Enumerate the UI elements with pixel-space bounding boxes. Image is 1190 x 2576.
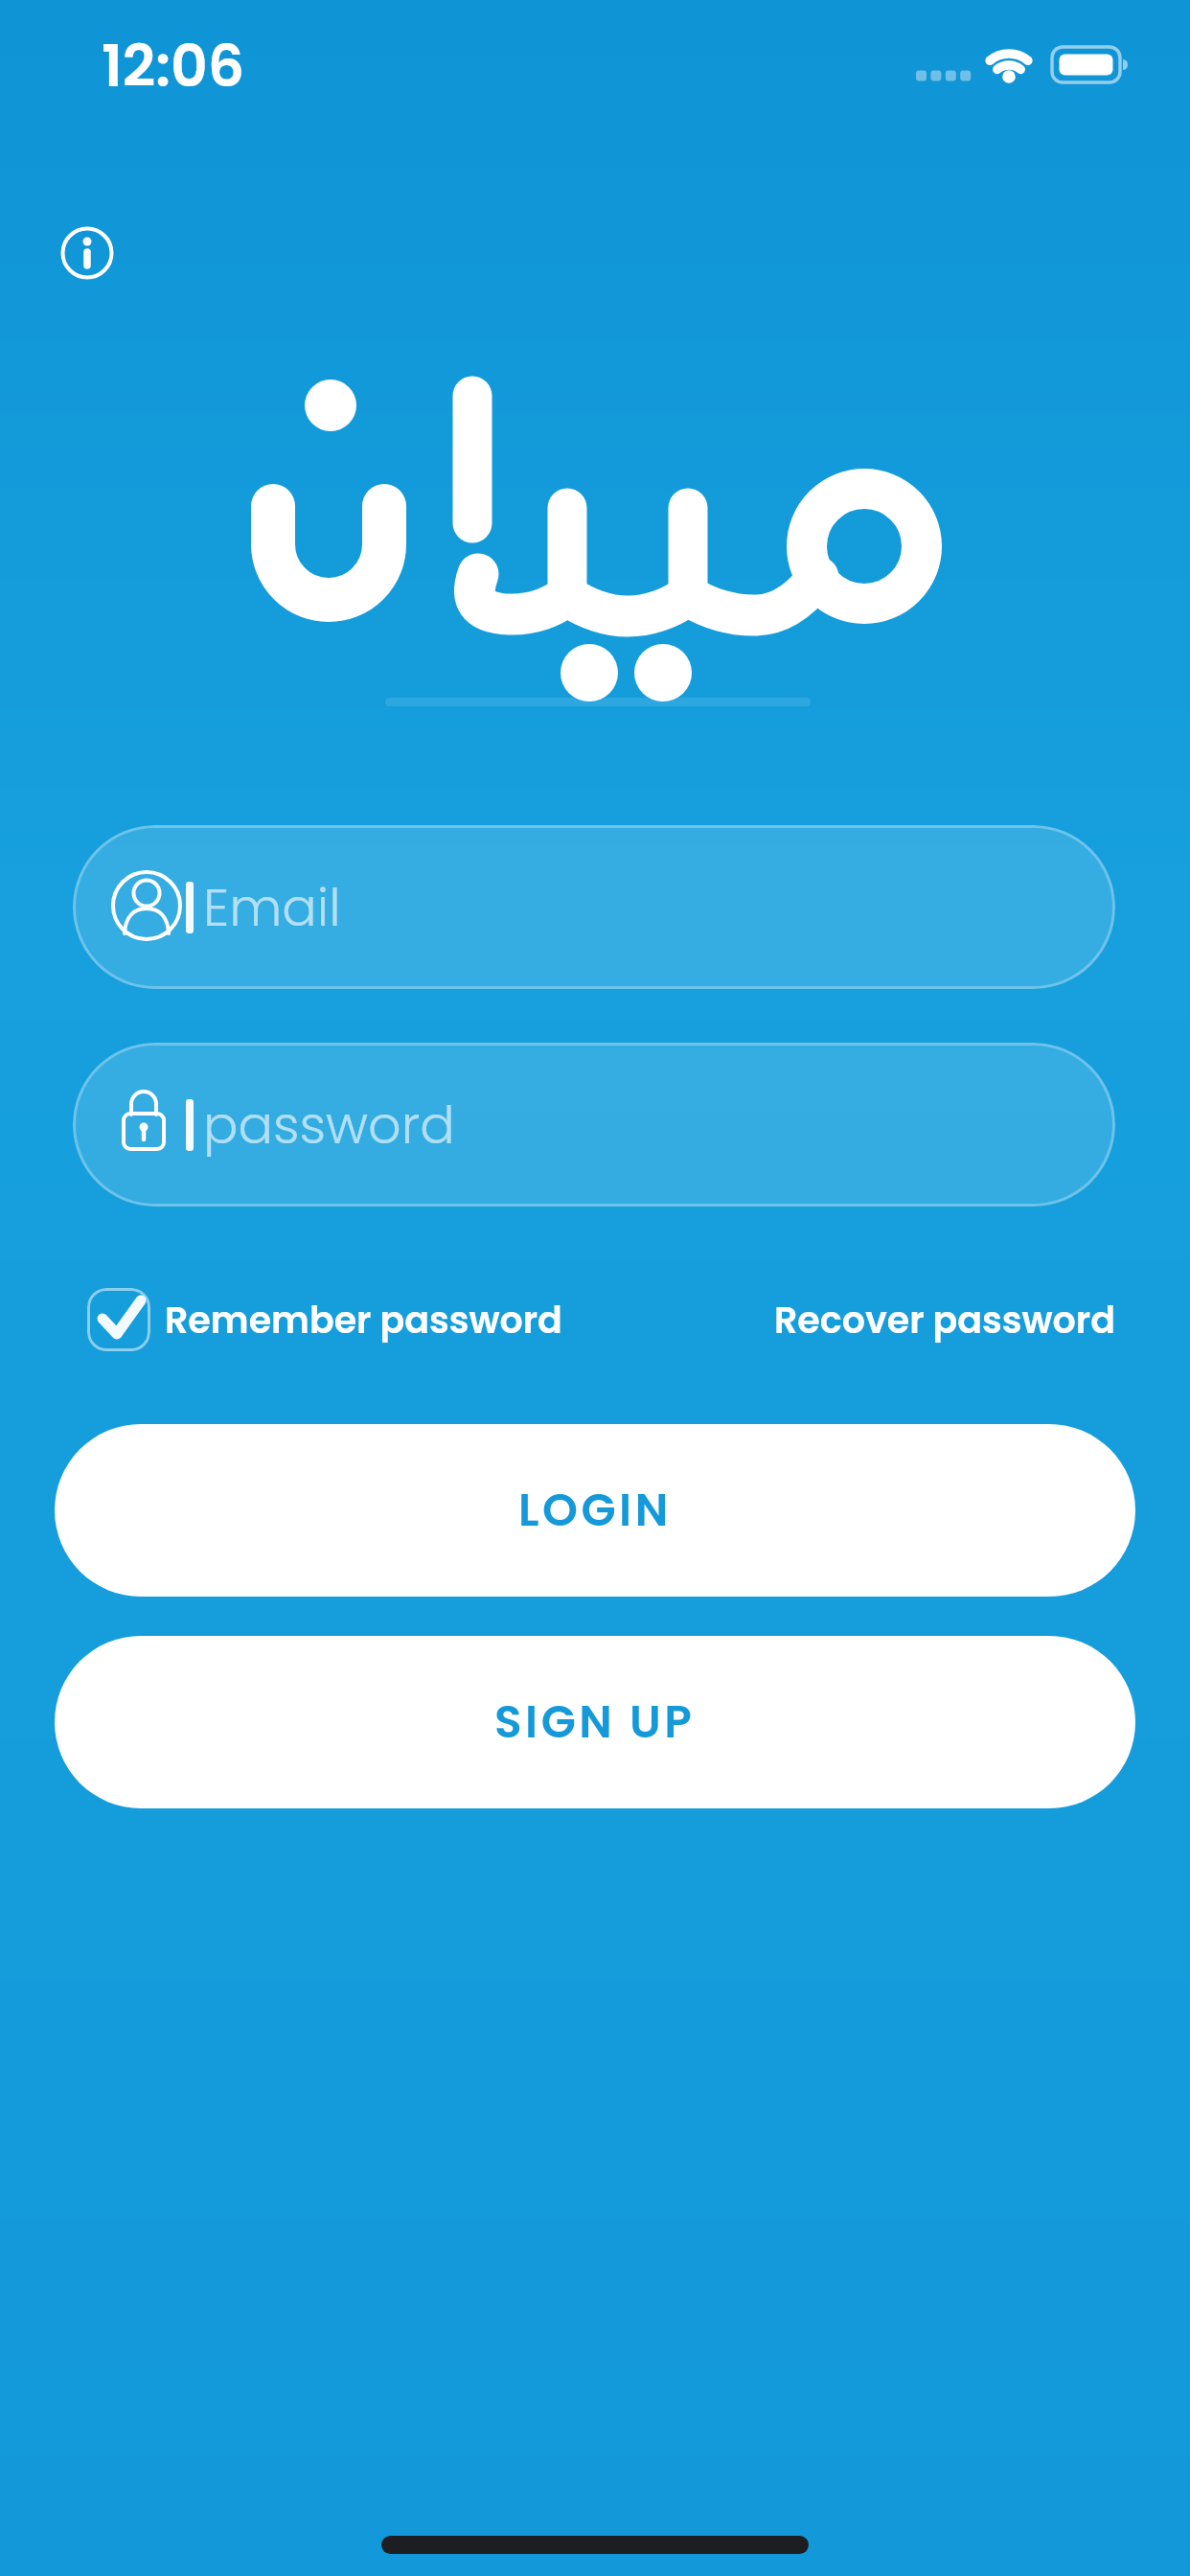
- button[interactable]: [56, 221, 119, 285]
- staticText: LOGIN: [518, 1479, 672, 1542]
- staticText: password: [203, 1089, 455, 1161]
- button[interactable]: password: [73, 1043, 1115, 1207]
- button[interactable]: SIGN UP: [55, 1636, 1135, 1808]
- button[interactable]: LOGIN: [55, 1424, 1135, 1597]
- staticText: SIGN UP: [494, 1690, 696, 1754]
- staticText: Email: [203, 871, 341, 944]
- button[interactable]: Remember password: [165, 1288, 562, 1351]
- button[interactable]: Email: [73, 825, 1115, 989]
- button[interactable]: [87, 1288, 150, 1351]
- staticText: 12:06: [102, 26, 245, 106]
- button[interactable]: Recover password: [774, 1295, 1115, 1345]
- staticText: Remember password: [165, 1295, 562, 1345]
